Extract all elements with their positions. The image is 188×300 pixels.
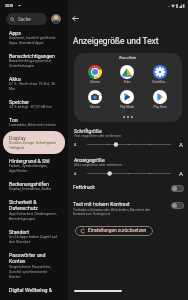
button[interactable]: Hintergrund & Stil: [3, 154, 65, 177]
staticText: Benachrichtigungsverlauf, Unterhaltungen: [9, 59, 52, 68]
staticText: Chrome: [80, 80, 110, 83]
staticText: Passwörter und Konten: [9, 252, 46, 265]
staticText: A: [179, 141, 184, 148]
staticText: Hintergrund & Stil: [9, 158, 50, 164]
staticText: Apps: [9, 30, 21, 36]
staticText: Fettdruck: [73, 184, 95, 190]
staticText: 67 % - Noch etwa 15 Std., 26 Min.: [9, 82, 56, 91]
button[interactable]: Digital Wellbeing &: [3, 283, 65, 297]
button[interactable]: Display: [3, 131, 65, 154]
staticText: An 24 Apps haben Zugriff auf den Standor…: [9, 235, 58, 244]
staticText: 32 % belegt - 87,39 GB frei: [9, 105, 52, 109]
staticText: A: [179, 170, 184, 177]
staticText: Kamera: [80, 105, 110, 108]
staticText: Display, Interaktion, Audio: [9, 187, 51, 191]
staticText: Sicherheit & Datenschutz: [9, 199, 38, 212]
staticText: Display: [9, 135, 26, 141]
staticText: Akku: [9, 76, 21, 82]
staticText: 20:25: [5, 4, 14, 8]
button[interactable]: Einstellungen zurücksetzen: [75, 226, 153, 236]
staticText: Suche: [18, 17, 31, 22]
staticText: Text mit hohem Kontrast: [73, 201, 130, 207]
staticText: Farben, Symboldesigns, App-Raster: [9, 164, 48, 173]
staticText: Benachrichtigungen: [9, 53, 55, 59]
staticText: Text vergrößern oder verkleinern: [74, 134, 122, 138]
button[interactable]: Text mit hohem Kontrast: [68, 200, 188, 217]
staticText: Assistent, kürzlich geöffnete Apps, Stan…: [9, 36, 56, 45]
staticText: Drive: [112, 80, 142, 83]
staticText: Bedienungshilfen: [9, 181, 49, 187]
staticText: A: [74, 143, 77, 147]
button[interactable]: Ton: [3, 113, 65, 131]
button[interactable]: Profil: [51, 14, 61, 24]
button[interactable]: Benachrichtigungen: [3, 49, 65, 72]
staticText: Textfarbe in Schwarz oder Weiß ändern, M…: [73, 208, 151, 216]
button[interactable]: Sicherheit & Datenschutz: [3, 195, 65, 225]
button[interactable]: Speicher: [3, 95, 65, 113]
staticText: App-Sicherheit, Gerätesperre, Berechtigu…: [9, 212, 57, 221]
staticText: Speicher: [9, 99, 30, 105]
staticText: Einstellungen zurücksetzen: [88, 228, 147, 234]
staticText: Play Store: [145, 105, 175, 108]
staticText: Standort: [9, 229, 29, 235]
button[interactable]: Apps: [3, 26, 65, 49]
button[interactable]: Akku: [3, 72, 65, 95]
button[interactable]: Suche: [6, 13, 47, 25]
button[interactable]: Zurück: [69, 12, 82, 25]
staticText: Gespeicherte Passwörter, Autofill, synch…: [9, 265, 51, 279]
staticText: Dunkles Design, Schriftgröße, Helligkeit: [9, 141, 57, 150]
staticText: Schriftgröße: [74, 128, 102, 134]
staticText: Wunschliste: [119, 56, 137, 60]
staticText: Anzeigegröße und Text: [73, 36, 159, 46]
button[interactable]: Bedienungshilfen: [3, 177, 65, 195]
staticText: Anzeigegröße: [74, 157, 105, 163]
staticText: Play Musik: [112, 105, 142, 108]
button[interactable]: Fettdruck: [68, 183, 188, 192]
staticText: A: [74, 172, 77, 176]
staticText: Lautstärke, Bitte nicht stören: [9, 123, 56, 127]
staticText: Alles vergrößern oder verkleinern: [74, 163, 123, 167]
button[interactable]: Standort: [3, 225, 65, 248]
button[interactable]: Passwörter und Konten: [3, 248, 65, 283]
staticText: Ton: [9, 117, 18, 123]
staticText: Einstellun...: [145, 80, 175, 83]
staticText: Digital Wellbeing &: [9, 287, 52, 293]
